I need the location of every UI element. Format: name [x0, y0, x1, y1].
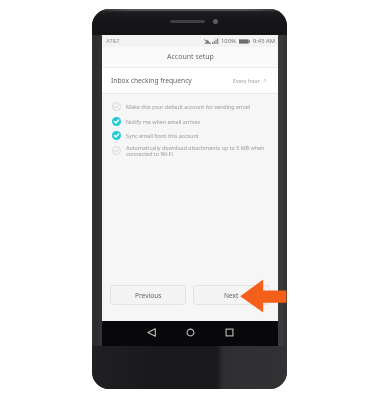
- staticText: Inbox checking frequency: [111, 76, 192, 85]
- staticText: Make this your default account for sendi…: [126, 103, 250, 110]
- staticText: Next: [224, 291, 239, 300]
- staticText: 9:45 AM: [253, 37, 275, 45]
- button[interactable]: Make this your default account for sendi…: [102, 99, 278, 114]
- button[interactable]: Sync email from this account: [102, 128, 278, 143]
- button[interactable]: Inbox checking frequency: [102, 68, 278, 93]
- staticText: Account setup: [167, 52, 214, 62]
- staticText: Previous: [135, 291, 162, 300]
- button[interactable]: Back: [142, 323, 160, 341]
- button[interactable]: Recent apps: [220, 323, 238, 341]
- staticText: Every hour: [233, 77, 260, 84]
- button[interactable]: Previous: [110, 285, 186, 305]
- staticText: Automatically download attachments up to…: [126, 144, 265, 158]
- staticText: Sync email from this account: [126, 132, 199, 139]
- staticText: Notify me when email arrives: [126, 118, 201, 125]
- button[interactable]: Next: [193, 285, 270, 305]
- button[interactable]: Notify me when email arrives: [102, 114, 278, 129]
- staticText: AT&T: [106, 37, 120, 45]
- button[interactable]: Automatically download attachments up to…: [102, 143, 278, 158]
- staticText: 100%: [221, 37, 236, 45]
- button[interactable]: Home: [181, 323, 199, 341]
